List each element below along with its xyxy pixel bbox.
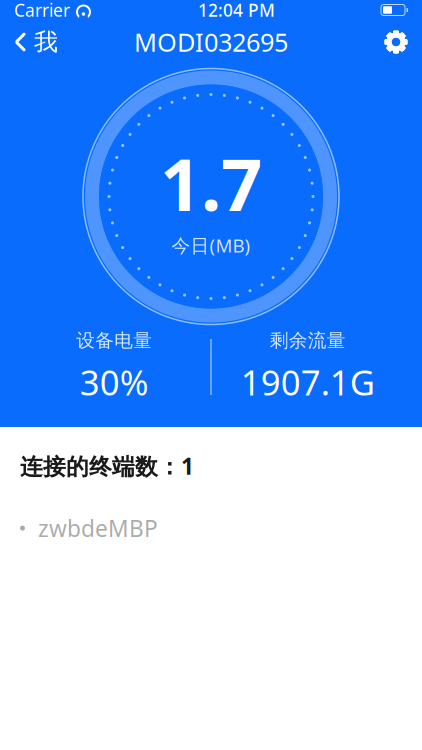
button[interactable]: Settings xyxy=(370,20,422,64)
staticText: 今日(MB) xyxy=(171,233,250,258)
button[interactable]: zwbdeMBP xyxy=(0,511,422,545)
staticText: 设备电量 xyxy=(76,329,152,352)
staticText: 12:04 PM xyxy=(198,0,275,21)
staticText: 连接的终端数：1 xyxy=(20,451,194,481)
staticText: Carrier xyxy=(14,0,70,21)
staticText: 30% xyxy=(80,359,149,405)
staticText: 剩余流量 xyxy=(270,329,346,352)
staticText: 1907.1G xyxy=(241,359,375,405)
staticText: zwbdeMBP xyxy=(38,513,158,543)
staticText: 我 xyxy=(34,27,58,57)
staticText: 1.7 xyxy=(160,135,262,231)
staticText: MODI032695 xyxy=(134,25,288,59)
button[interactable]: 我 xyxy=(0,20,72,64)
